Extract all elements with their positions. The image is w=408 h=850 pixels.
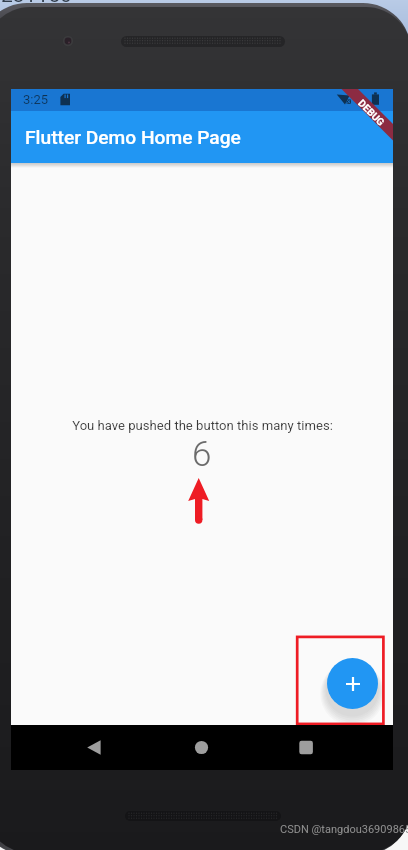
staticText: 6 <box>192 434 212 475</box>
staticText: 3:25 <box>23 92 49 107</box>
staticText: Flutter Demo Home Page <box>25 126 241 149</box>
staticText: You have pushed the button this many tim… <box>72 418 333 433</box>
staticText: DEBUG <box>355 97 386 128</box>
staticText: 231150 <box>1 0 72 8</box>
button[interactable]: Increment <box>327 658 378 709</box>
staticText: CSDN @tangdou369098655 <box>280 823 408 836</box>
